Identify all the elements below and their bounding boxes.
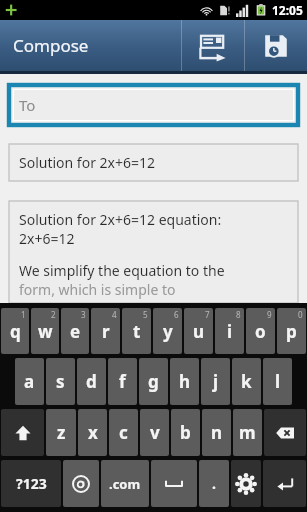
staticText: Solution for 2x+6=12 equation: bbox=[19, 210, 222, 229]
button[interactable]: e bbox=[61, 308, 89, 354]
staticText: 6 bbox=[174, 309, 179, 320]
button[interactable]: g bbox=[139, 358, 168, 405]
button[interactable]: u bbox=[184, 308, 213, 354]
button[interactable]: q bbox=[1, 308, 29, 354]
staticText: 2x+6=12 bbox=[19, 229, 75, 248]
button[interactable]: z bbox=[46, 409, 76, 456]
staticText: d bbox=[86, 370, 97, 393]
button[interactable]: b bbox=[171, 409, 200, 456]
staticText: y bbox=[163, 320, 173, 343]
button[interactable]: d bbox=[77, 358, 106, 405]
staticText: i bbox=[227, 320, 233, 343]
button[interactable]: c bbox=[109, 409, 138, 456]
button[interactable]: n bbox=[202, 409, 231, 456]
staticText: f bbox=[119, 370, 126, 393]
staticText: c bbox=[119, 421, 128, 444]
button[interactable]: h bbox=[170, 358, 199, 405]
button[interactable]: w bbox=[31, 308, 59, 354]
staticText: s bbox=[56, 370, 65, 393]
staticText: 3 bbox=[81, 309, 86, 320]
staticText: Solution for 2x+6=12 bbox=[19, 153, 156, 172]
button[interactable]: j bbox=[201, 358, 230, 405]
button[interactable]: t bbox=[122, 308, 151, 354]
button[interactable]: Space bbox=[151, 460, 197, 507]
staticText: m bbox=[239, 421, 256, 444]
staticText: 12:05 bbox=[272, 2, 303, 18]
button[interactable]: Send bbox=[182, 20, 244, 71]
staticText: 2 bbox=[51, 309, 56, 320]
staticText: g bbox=[148, 370, 159, 393]
button[interactable]: i bbox=[215, 308, 244, 354]
button[interactable]: At sign bbox=[63, 460, 99, 507]
button[interactable]: r bbox=[91, 308, 120, 354]
staticText: k bbox=[241, 370, 252, 393]
staticText: 5 bbox=[143, 309, 148, 320]
staticText: j bbox=[213, 370, 219, 393]
button[interactable]: To bbox=[9, 85, 298, 125]
button[interactable]: m bbox=[233, 409, 262, 456]
button[interactable]: . bbox=[199, 460, 229, 507]
button[interactable]: Settings bbox=[231, 460, 261, 507]
staticText: b bbox=[180, 421, 191, 444]
button[interactable]: s bbox=[46, 358, 75, 405]
button[interactable]: p bbox=[277, 308, 306, 354]
button[interactable]: Enter bbox=[263, 460, 306, 507]
button[interactable]: Save draft bbox=[245, 20, 307, 71]
staticText: a bbox=[24, 370, 35, 393]
button[interactable]: y bbox=[153, 308, 182, 354]
staticText: We simplify the equation to the bbox=[19, 261, 225, 280]
staticText: n bbox=[211, 421, 223, 444]
staticText: ?123 bbox=[16, 474, 47, 493]
staticText: 9 bbox=[267, 309, 272, 320]
staticText: z bbox=[57, 421, 66, 444]
staticText: p bbox=[286, 320, 297, 343]
staticText: . bbox=[212, 474, 216, 493]
button[interactable]: v bbox=[140, 409, 169, 456]
staticText: w bbox=[38, 320, 53, 343]
staticText: t bbox=[133, 320, 141, 343]
staticText: form, which is simple to bbox=[19, 280, 176, 299]
button[interactable]: Solution for 2x+6=12 equation: bbox=[9, 201, 298, 303]
button[interactable]: .com bbox=[101, 460, 149, 507]
button[interactable]: a bbox=[15, 358, 44, 405]
staticText: 4 bbox=[112, 309, 117, 320]
staticText: 8 bbox=[236, 309, 241, 320]
staticText: o bbox=[255, 320, 266, 343]
button[interactable]: o bbox=[246, 308, 275, 354]
button[interactable]: Backspace bbox=[264, 409, 306, 456]
staticText: 1 bbox=[21, 309, 26, 320]
staticText: To bbox=[19, 95, 36, 115]
staticText: q bbox=[10, 320, 21, 343]
staticText: v bbox=[150, 421, 160, 444]
staticText: .com bbox=[109, 475, 141, 493]
button[interactable]: l bbox=[263, 358, 292, 405]
staticText: r bbox=[102, 320, 110, 343]
staticText: 7 bbox=[205, 309, 210, 320]
button[interactable]: ?123 bbox=[1, 460, 61, 507]
button[interactable]: Solution for 2x+6=12 bbox=[9, 144, 298, 181]
button[interactable]: f bbox=[108, 358, 137, 405]
staticText: h bbox=[179, 370, 191, 393]
staticText: x bbox=[88, 421, 98, 444]
button[interactable]: Shift bbox=[1, 409, 44, 456]
staticText: Compose bbox=[13, 34, 89, 57]
staticText: e bbox=[70, 320, 81, 343]
staticText: l bbox=[275, 370, 281, 393]
staticText: u bbox=[193, 320, 205, 343]
button[interactable]: x bbox=[78, 409, 107, 456]
staticText: 0 bbox=[298, 309, 303, 320]
button[interactable]: k bbox=[232, 358, 261, 405]
